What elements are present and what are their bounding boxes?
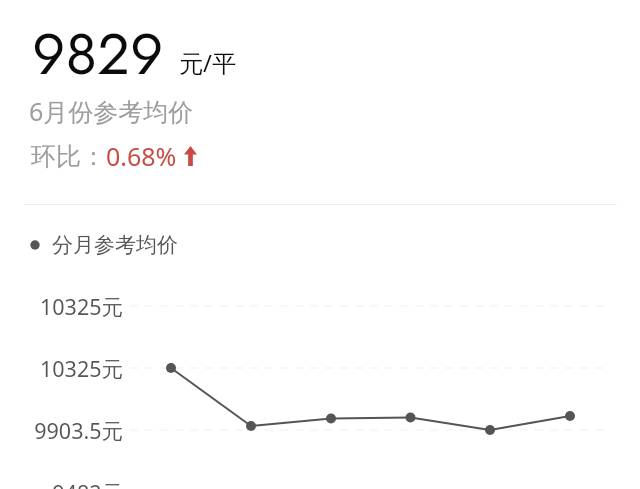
button[interactable]: 分月参考均价 [30,232,178,258]
staticText: 9482元 [0,478,123,489]
staticText: 9829 [32,12,164,96]
staticText: 0.68% [106,139,177,173]
staticText: 元/平 [179,46,236,79]
staticText: 10325元 [0,354,123,383]
staticText: 6月份参考均价 [29,94,194,128]
staticText: 10325元 [0,292,123,321]
staticText: 9903.5元 [0,416,123,445]
staticText: 环比： [31,141,106,172]
staticText: 分月参考均价 [52,232,178,258]
